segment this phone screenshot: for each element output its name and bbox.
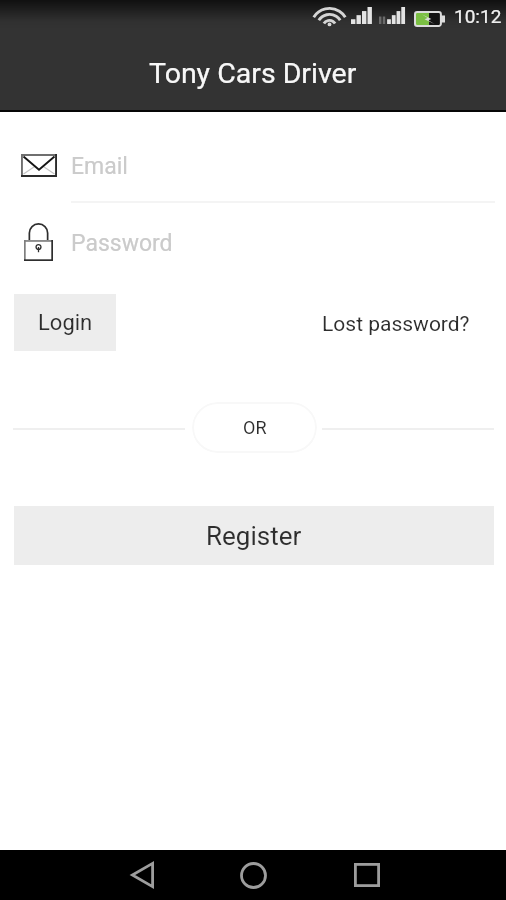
button[interactable]: Lost password?	[306, 301, 486, 347]
button[interactable]: Home	[201, 850, 312, 900]
button[interactable]: Recent apps	[312, 850, 423, 900]
button[interactable]: Back	[83, 850, 201, 900]
staticText: Password	[71, 230, 173, 257]
staticText: Register	[206, 521, 302, 551]
button[interactable]	[0, 212, 495, 274]
staticText: OR	[243, 417, 267, 438]
staticText: Login	[38, 310, 93, 336]
staticText: 10:12	[454, 5, 502, 27]
button[interactable]: Register	[14, 506, 494, 565]
staticText: Tony Cars Driver	[149, 57, 357, 90]
button[interactable]	[0, 128, 495, 190]
staticText: Email	[71, 153, 128, 180]
button[interactable]: Login	[14, 294, 116, 351]
staticText: Lost password?	[322, 312, 470, 337]
